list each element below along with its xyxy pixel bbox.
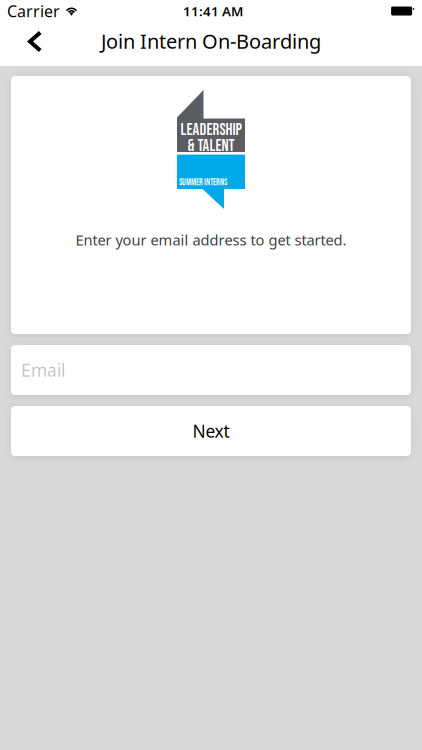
staticText: LEADERSHIP — [180, 120, 241, 140]
staticText: SUMMER INTERNS — [179, 177, 227, 188]
staticText: Carrier — [7, 0, 60, 22]
button[interactable]: Next — [11, 406, 411, 456]
staticText: Enter your email address to get started. — [75, 230, 346, 249]
staticText: 11:41 AM — [183, 2, 243, 20]
staticText: Next — [192, 419, 229, 442]
staticText: Email — [21, 358, 65, 381]
staticText: Join Intern On-Boarding — [101, 28, 321, 54]
staticText: & TALENT — [187, 136, 234, 156]
button[interactable]: Back — [13, 22, 57, 66]
